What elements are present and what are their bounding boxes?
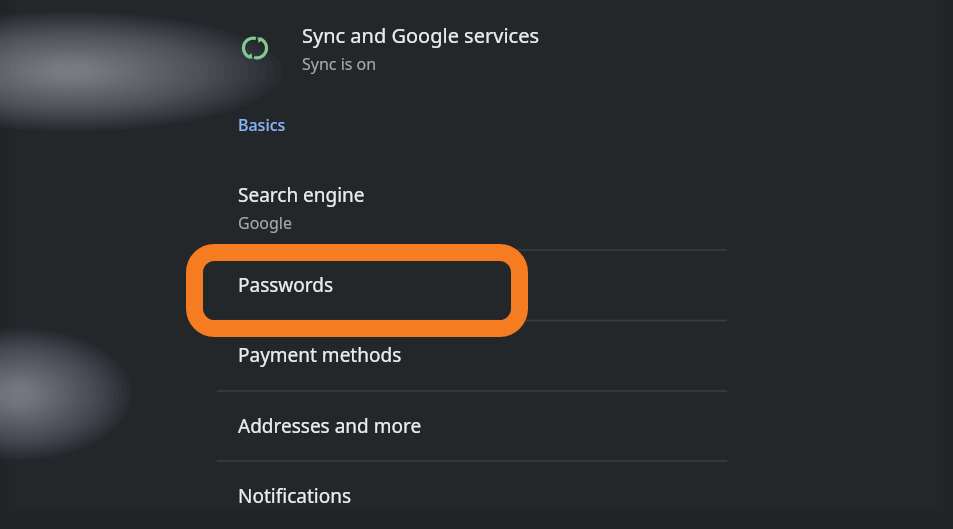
button[interactable]: Addresses and more bbox=[217, 391, 727, 461]
button[interactable]: Payment methods bbox=[217, 320, 727, 390]
staticText: Payment methods bbox=[238, 342, 402, 368]
staticText: Passwords bbox=[238, 272, 334, 298]
button[interactable]: Sync bbox=[217, 0, 727, 96]
button[interactable]: Notifications bbox=[217, 461, 727, 529]
button[interactable]: Passwords bbox=[217, 250, 727, 320]
staticText: Google bbox=[238, 212, 293, 234]
staticText: Sync and Google services bbox=[302, 22, 540, 49]
staticText: Notifications bbox=[238, 483, 352, 509]
staticText: Addresses and more bbox=[238, 413, 422, 439]
staticText: Sync is on bbox=[302, 53, 377, 75]
staticText: Basics bbox=[238, 114, 286, 136]
staticText: Search engine bbox=[238, 182, 365, 208]
button[interactable]: Search engine bbox=[217, 165, 727, 250]
other: Sync bbox=[238, 31, 272, 65]
